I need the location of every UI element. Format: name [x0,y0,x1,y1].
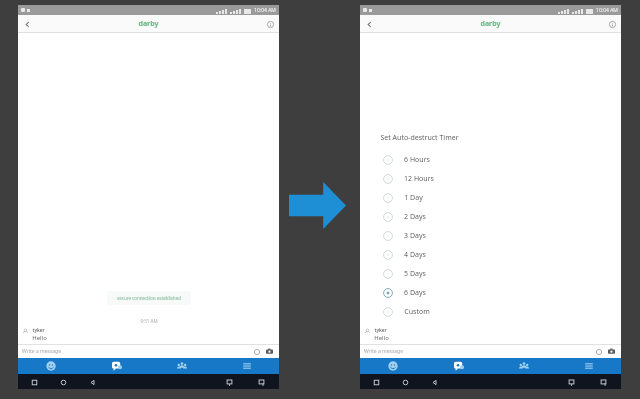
staticText: 5 Days [404,269,426,279]
button[interactable]: Recents [28,376,40,388]
staticText: darby [480,19,501,29]
button[interactable]: Camera [264,346,275,357]
button[interactable]: Info [261,15,279,33]
button[interactable]: 2 Days [360,207,621,226]
staticText: Custom [404,307,430,317]
staticText: 10:04 AM [254,7,276,14]
staticText: 2 Days [404,212,426,222]
button[interactable]: Back [86,376,98,388]
button[interactable]: Split screen [565,376,577,388]
staticText: 12 Hours [404,174,434,184]
button[interactable]: 12 Hours [360,169,621,188]
button[interactable]: 3 Days [360,226,621,245]
button[interactable]: Menu [556,358,621,374]
staticText: 1 Day [404,193,423,203]
staticText: Set Auto-destruct Timer [380,133,459,143]
staticText: 6 Days [404,288,426,298]
button[interactable]: Custom [360,302,621,321]
staticText: Hello [32,334,47,342]
button[interactable]: Home [57,376,69,388]
button[interactable]: Split screen [223,376,235,388]
staticText: 3 Days [404,231,426,241]
button[interactable]: 5 Days [360,264,621,283]
staticText: 9:51 AM [140,318,158,324]
button[interactable]: Emoji [593,346,604,357]
button[interactable]: Camera [606,346,617,357]
staticText: Write a message [22,348,61,355]
button[interactable]: Menu [214,358,279,374]
staticText: 4 Days [404,250,426,260]
staticText: Hello [374,334,389,342]
staticText: 6 Hours [404,155,430,165]
button[interactable]: 6 Hours [360,150,621,169]
button[interactable]: Chats [84,358,149,374]
button[interactable]: 1 Day [360,188,621,207]
button[interactable]: 4 Days [360,245,621,264]
button[interactable]: Home [399,376,411,388]
button[interactable]: Back [360,15,378,33]
staticText: tyker [374,327,387,333]
staticText: darby [138,19,159,29]
button[interactable]: Stickers [360,358,426,374]
button[interactable]: Chats [426,358,491,374]
button[interactable]: Recents [370,376,382,388]
staticText: 10:04 AM [596,7,618,14]
button[interactable]: Groups [149,358,214,374]
button[interactable]: Download [597,376,609,388]
staticText: Write a message [364,348,403,355]
button[interactable]: Download [255,376,267,388]
button[interactable]: Stickers [18,358,84,374]
button[interactable]: Groups [491,358,556,374]
button[interactable]: Back [428,376,440,388]
button[interactable]: Info [603,15,621,33]
button[interactable]: 6 Days [360,283,621,302]
staticText: secure connection established [117,295,181,301]
button[interactable]: Emoji [251,346,262,357]
button[interactable]: Back [18,15,36,33]
staticText: tyker [32,327,45,333]
